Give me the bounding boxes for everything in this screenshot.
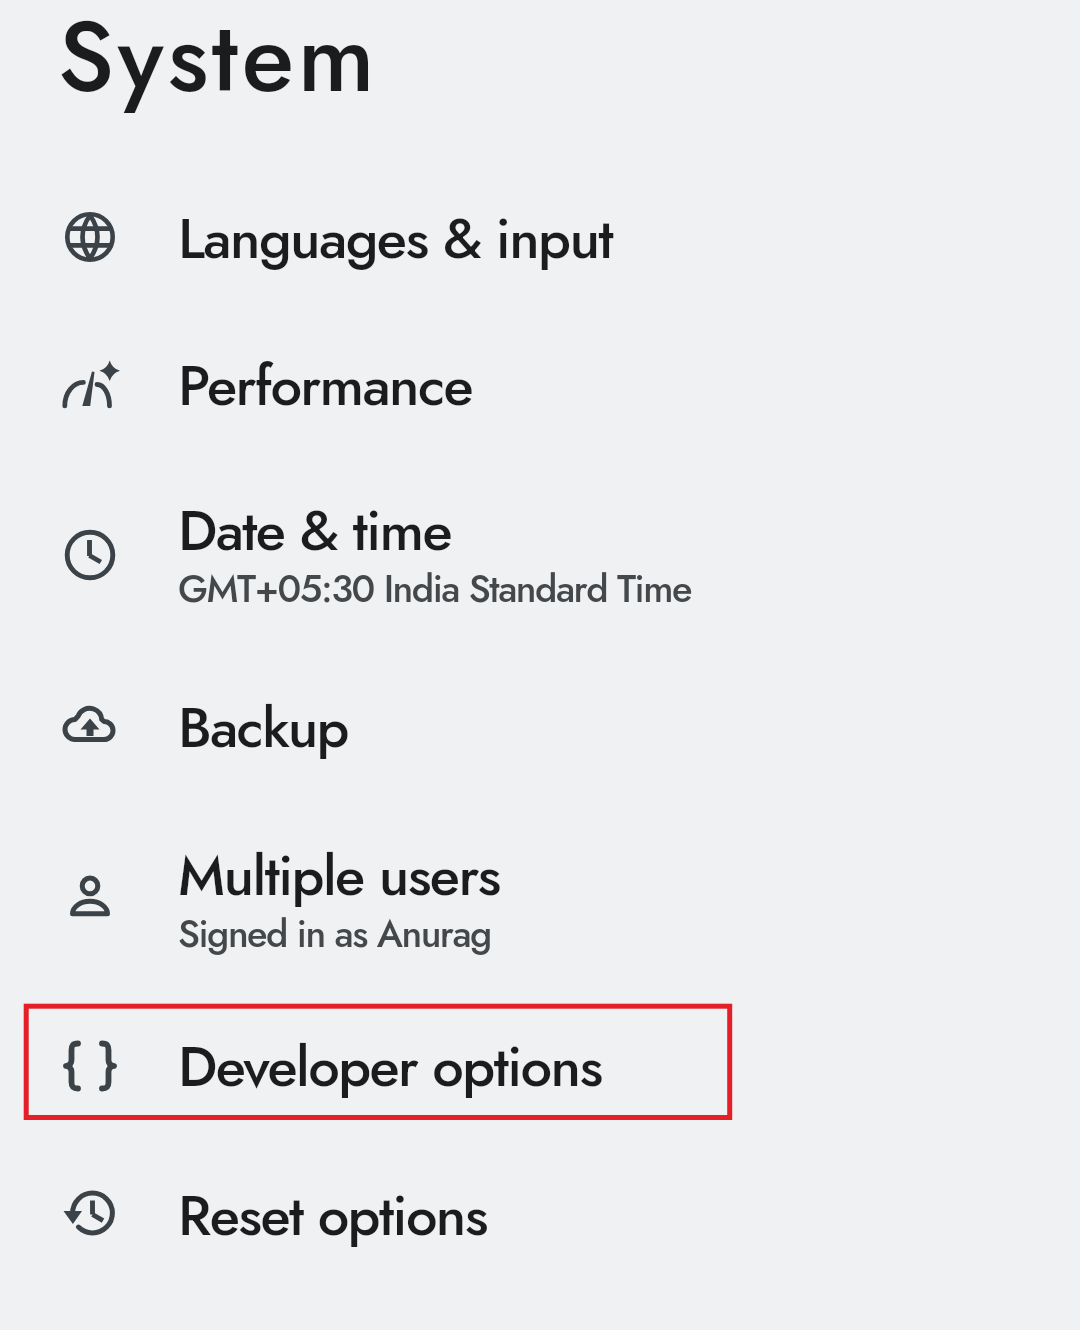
button[interactable]: Languages & input [0,178,1080,298]
staticText: Multiple users [178,835,500,916]
staticText: System [58,0,379,127]
button[interactable]: Backup [0,667,1080,787]
button[interactable]: Developer options [0,1006,1080,1126]
staticText: Backup [178,687,348,768]
staticText: Signed in as Anurag [178,906,491,961]
staticText: Performance [178,345,473,426]
button[interactable]: Performance [0,325,1080,445]
button[interactable]: Date & time [0,489,1080,628]
button[interactable]: Multiple users [0,833,1080,973]
staticText: Reset options [178,1175,487,1256]
staticText: Date & time [178,490,452,571]
button[interactable]: Reset options [0,1155,1080,1275]
staticText: GMT+05:30 India Standard Time [178,561,691,616]
staticText: Languages & input [178,198,612,279]
staticText: Developer options [178,1026,602,1107]
